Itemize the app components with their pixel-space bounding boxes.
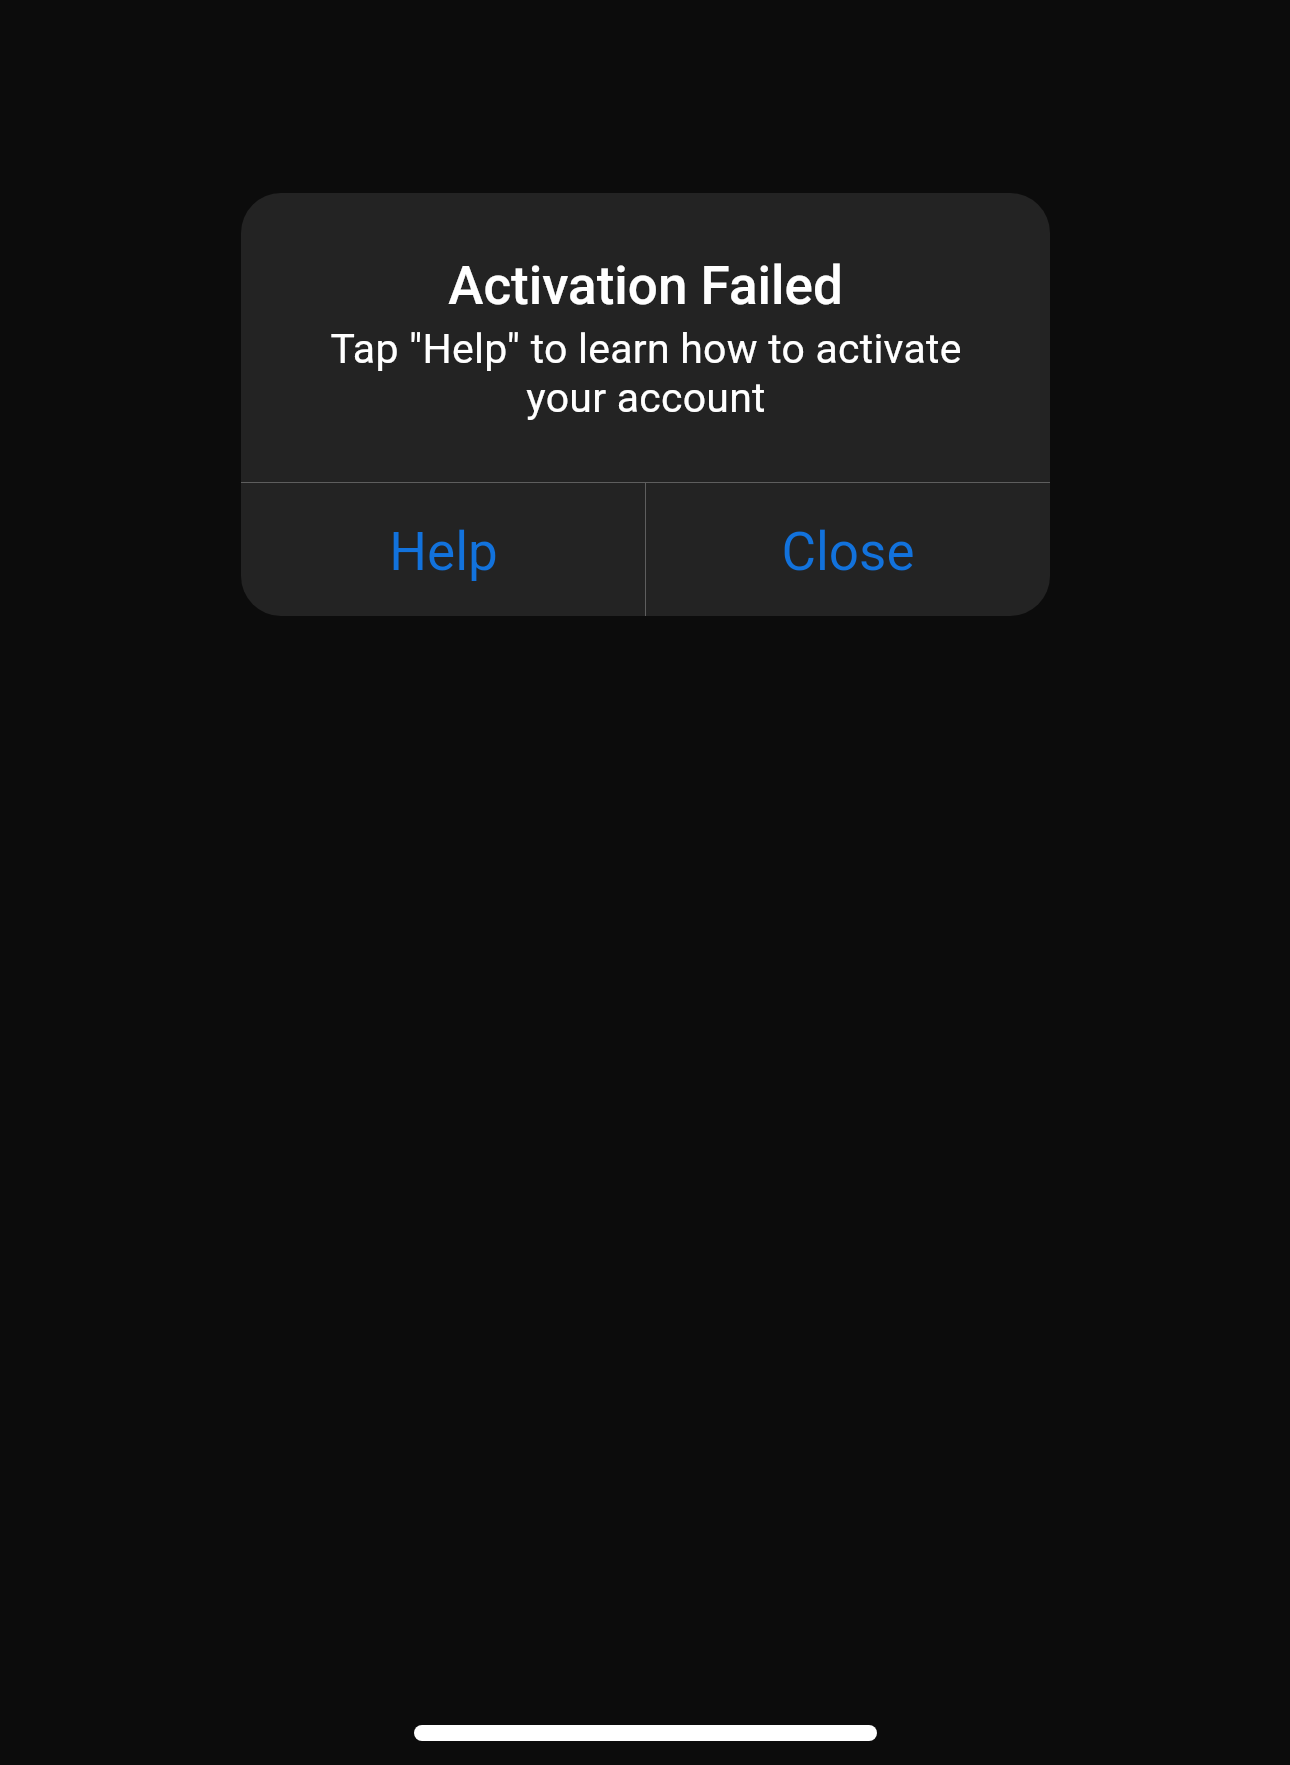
staticText: Close	[781, 521, 915, 583]
staticText: Help	[389, 521, 498, 583]
staticText: Tap "Help" to learn how to activate your…	[330, 325, 962, 422]
button[interactable]: Help	[241, 483, 645, 616]
staticText: Activation Failed	[448, 255, 843, 317]
button[interactable]: Close	[646, 483, 1050, 616]
other: Home indicator	[414, 1725, 877, 1741]
